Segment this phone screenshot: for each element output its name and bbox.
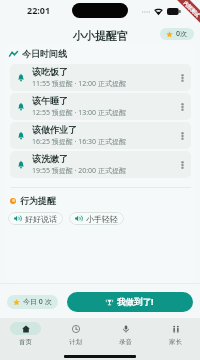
button[interactable]: 计划 [50, 322, 100, 347]
staticText: 好好说话 [25, 214, 57, 224]
button[interactable]: 该洗漱了 [10, 151, 191, 178]
staticText: 该午睡了 [32, 95, 68, 106]
button[interactable]: 我做到了! [67, 292, 193, 312]
button[interactable]: More options [175, 126, 189, 146]
staticText: 今日 0 次 [23, 297, 52, 307]
staticText: 今日时间线 [22, 48, 67, 59]
staticText: 小手轻轻 [86, 214, 118, 224]
button[interactable]: 首页 [0, 322, 50, 347]
staticText: 计划 [69, 338, 82, 346]
staticText: 录音 [119, 338, 132, 346]
staticText: 0次 [176, 29, 188, 39]
staticText: 19:55 预提醒 · 20:00 正式提醒 [32, 166, 126, 176]
staticText: 16:25 预提醒 · 16:30 正式提醒 [32, 137, 126, 147]
button[interactable]: 该做作业了 [10, 122, 191, 149]
staticText: 该做作业了 [32, 124, 77, 135]
button[interactable]: 该午睡了 [10, 93, 191, 120]
button[interactable]: 家长 [150, 322, 200, 347]
staticText: 该吃饭了 [32, 66, 68, 77]
staticText: 行为提醒 [20, 195, 56, 206]
button[interactable]: 好好说话 [8, 212, 63, 225]
staticText: 11:55 预提醒 · 12:00 正式提醒 [32, 79, 126, 89]
button[interactable]: 录音 [100, 322, 150, 347]
button[interactable]: More options [175, 155, 189, 175]
staticText: 家长 [169, 338, 182, 346]
staticText: 该洗漱了 [32, 153, 68, 164]
button[interactable]: 今日 0 次 [7, 295, 58, 309]
button[interactable]: 小手轻轻 [69, 212, 124, 225]
button[interactable]: More options [175, 68, 189, 88]
staticText: 22:01 [27, 4, 51, 16]
staticText: 12:55 预提醒 · 13:00 正式提醒 [32, 108, 126, 118]
staticText: 首页 [19, 338, 32, 346]
button[interactable]: More options [175, 97, 189, 117]
button[interactable]: 该吃饭了 [10, 64, 191, 91]
staticText: 我做到了! [117, 296, 154, 308]
staticText: 小小提醒官 [73, 29, 128, 43]
staticText: 内部测试 [182, 0, 200, 18]
button[interactable]: 0次 [160, 28, 194, 40]
